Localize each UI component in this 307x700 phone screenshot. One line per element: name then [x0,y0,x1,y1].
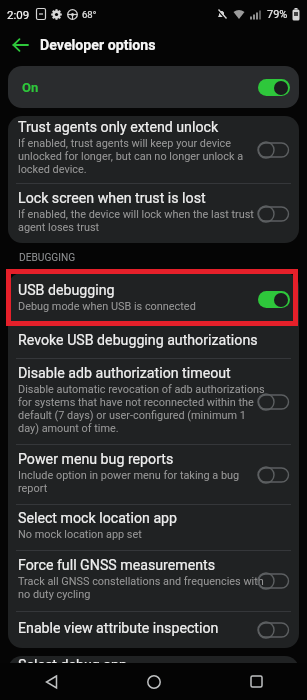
button[interactable]: Disable adb authorization timeout [8,359,299,444]
button[interactable]: Revoke USB debugging authorizations [8,326,299,358]
button[interactable]: On [22,66,290,108]
button[interactable]: Select mock location app [8,505,299,550]
button[interactable]: USB debugging [8,273,299,325]
staticText: On [22,80,39,95]
staticText: Include option in power menu for taking … [18,469,240,495]
staticText: Disable adb authorization timeout [18,365,231,382]
staticText: USB debugging [18,282,115,299]
staticText: Power menu bug reports [18,451,174,468]
staticText: Developer options [40,37,156,54]
button[interactable]: Lock screen when trust is lost [8,184,299,243]
staticText: Lock screen when trust is lost [18,190,206,207]
staticText: 68° [82,9,97,20]
staticText: 2:09 [7,8,30,21]
staticText: Debug mode when USB is connected [18,300,196,313]
staticText: Track all GNSS constellations and freque… [18,575,264,601]
staticText: Trust agents only extend unlock [18,119,219,136]
button[interactable] [147,675,161,689]
staticText: Enable view attribute inspection [18,620,219,637]
button[interactable] [250,675,263,688]
staticText: Force full GNSS measurements [18,557,216,574]
staticText: If enabled, trust agents will keep your … [18,137,244,176]
staticText: Select mock location app [18,510,178,527]
button[interactable]: Select debug app [8,656,299,690]
button[interactable]: Enable view attribute inspection [8,612,299,648]
button[interactable]: Power menu bug reports [8,445,299,504]
button[interactable]: Trust agents only extend unlock [8,116,299,183]
staticText: Disable automatic revocation of adb auth… [18,383,265,435]
staticText: DEBUGGING [19,252,76,264]
button[interactable] [45,675,58,689]
button[interactable]: Force full GNSS measurements [8,551,299,611]
staticText: 79% [267,8,288,21]
staticText: No mock location app set [18,528,142,541]
staticText: Revoke USB debugging authorizations [18,332,258,349]
button[interactable] [12,38,29,52]
staticText: If enabled, the device will lock when th… [18,208,254,234]
staticText: Select debug app [18,657,127,674]
